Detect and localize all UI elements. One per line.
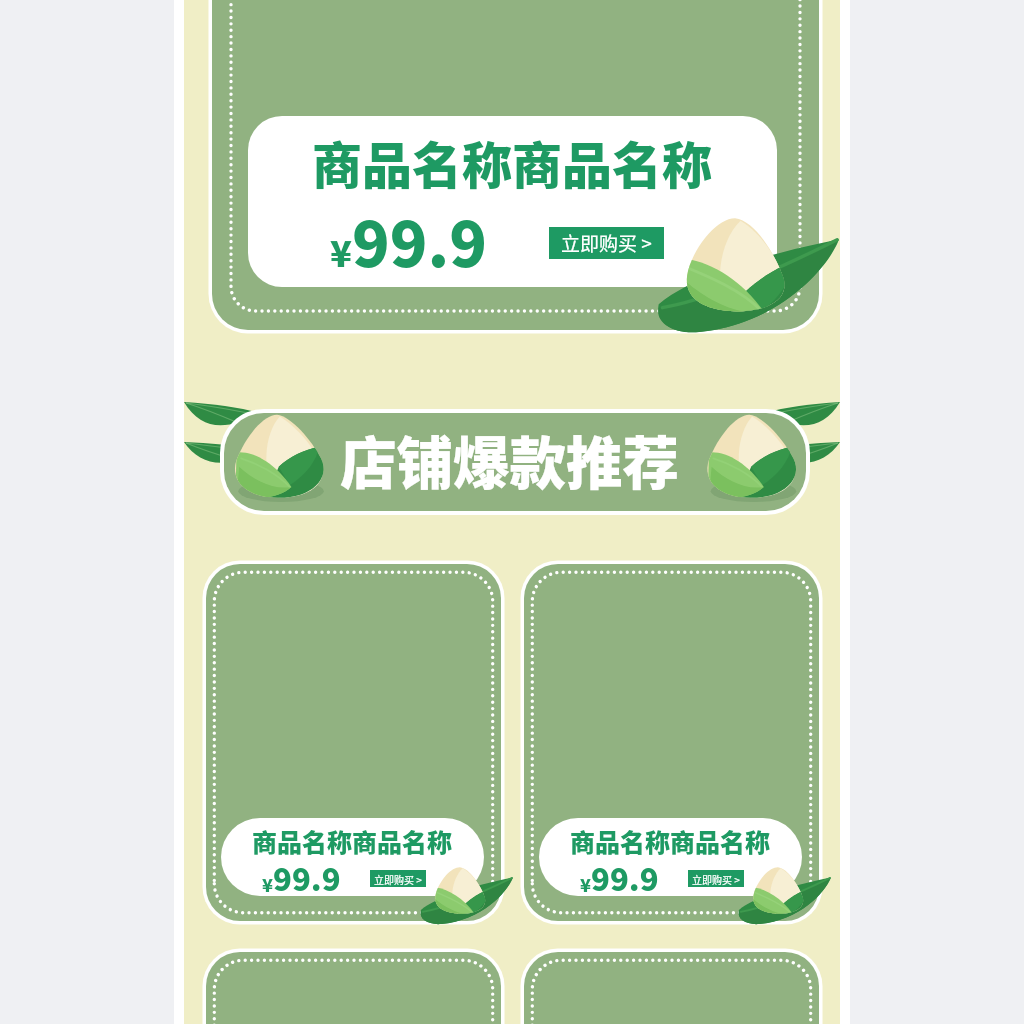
button[interactable]: 立即购买 >	[688, 870, 744, 887]
button[interactable]: 商品图片	[524, 952, 819, 1024]
staticText: 商品名称商品名称	[312, 126, 712, 198]
staticText: 99.9	[591, 855, 659, 896]
staticText: 立即购买 >	[561, 229, 652, 257]
staticText: 商品名称商品名称	[252, 823, 453, 859]
staticText: 99.9	[352, 195, 488, 285]
button[interactable]: 立即购买 >	[370, 870, 426, 887]
staticText: 店铺爆款推荐	[340, 418, 679, 500]
button[interactable]: 商品图片	[206, 564, 501, 921]
staticText: ¥	[262, 871, 273, 896]
button[interactable]: 立即购买 >	[549, 227, 664, 259]
staticText: ¥	[580, 871, 591, 896]
button[interactable]: 店铺爆款推荐	[224, 413, 806, 511]
button[interactable]: 主推商品海报	[212, 0, 819, 330]
staticText: 商品名称商品名称	[570, 823, 771, 859]
button[interactable]: 商品图片	[524, 564, 819, 921]
staticText: 立即购买 >	[692, 872, 740, 886]
staticText: 立即购买 >	[374, 872, 422, 886]
button[interactable]: 商品图片	[206, 952, 501, 1024]
staticText: ¥	[330, 225, 352, 277]
button[interactable]: 商品名称商品名称	[248, 116, 777, 287]
staticText: 99.9	[273, 855, 341, 896]
